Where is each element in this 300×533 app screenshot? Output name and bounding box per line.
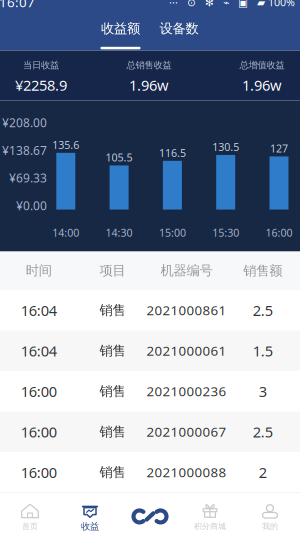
staticText: 16:00 — [21, 422, 57, 441]
staticText: 1.96w — [129, 75, 169, 95]
staticText: ¥2258.9 — [15, 75, 67, 95]
staticText: 135.6 — [52, 138, 79, 152]
staticText: 15:00 — [159, 225, 186, 240]
staticText: 16:00 — [21, 381, 57, 401]
staticText: 销售 — [99, 383, 125, 399]
staticText: 机器编号 — [160, 262, 212, 279]
staticText: ¥69.33 — [9, 170, 47, 186]
staticText: 2021000236 — [146, 382, 226, 400]
staticText: 销售 — [99, 423, 125, 440]
staticText: 时间 — [26, 262, 52, 279]
staticText: 2021000061 — [146, 342, 226, 359]
staticText: 127 — [270, 141, 288, 155]
staticText: 2021000861 — [146, 301, 226, 319]
staticText: 2 — [259, 462, 267, 482]
button[interactable]: 积分商城 — [180, 492, 240, 533]
staticText: 14:30 — [106, 225, 133, 240]
staticText: 收益额 — [101, 20, 140, 37]
staticText: 130.5 — [212, 140, 239, 154]
button[interactable]: 我的 — [240, 492, 300, 533]
staticText: 设备数 — [159, 20, 198, 37]
staticText: 2021000067 — [146, 423, 226, 440]
staticText: 项目 — [99, 262, 125, 279]
button[interactable]: 设备数 — [151, 12, 207, 51]
staticText: 1.5 — [253, 341, 273, 360]
staticText: 2.5 — [253, 300, 273, 320]
staticText: 3 — [259, 381, 267, 401]
staticText: 16:00 — [21, 462, 57, 482]
staticText: 销售 — [99, 464, 125, 480]
button[interactable]: 收益额 — [92, 12, 148, 51]
staticText: 116.5 — [159, 146, 186, 160]
button[interactable]: 首页 — [0, 492, 60, 533]
staticText: 销售 — [99, 342, 125, 359]
staticText: 首页 — [22, 521, 38, 531]
staticText: 销售 — [99, 302, 125, 318]
staticText: 我的 — [262, 521, 278, 531]
staticText: 总销售收益 — [126, 59, 171, 71]
staticText: 16:00 — [265, 225, 292, 240]
staticText: 2.5 — [253, 422, 273, 441]
staticText: 14:00 — [52, 225, 79, 240]
staticText: 收益 — [81, 521, 99, 532]
staticText: 积分商城 — [194, 521, 226, 531]
staticText: 16:07 — [0, 0, 35, 11]
staticText: 16:04 — [21, 341, 57, 360]
button[interactable]: 收益 — [60, 492, 120, 533]
staticText: ¥208.00 — [2, 115, 47, 130]
staticText: ¥138.67 — [2, 142, 47, 158]
staticText: 105.5 — [106, 150, 133, 164]
staticText: ¥0.00 — [16, 198, 47, 214]
staticText: 16:04 — [21, 300, 57, 320]
staticText: ··· ⊙ ✻ ⌁ ▣ ▰ 100% — [169, 0, 295, 9]
staticText: 1.96w — [242, 75, 282, 95]
staticText: 15:30 — [212, 225, 239, 240]
staticText: 2021000088 — [146, 463, 226, 481]
staticText: 销售额 — [243, 263, 282, 279]
staticText: 当日收益 — [23, 59, 59, 71]
button[interactable]: 扫一扫 — [130, 507, 169, 526]
staticText: 总增值收益 — [239, 59, 284, 71]
